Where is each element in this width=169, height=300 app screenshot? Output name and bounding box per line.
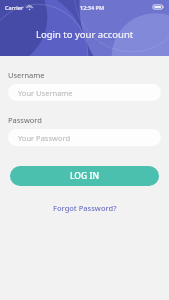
staticText: Your Username [18, 88, 73, 98]
staticText: Username [8, 70, 45, 80]
button[interactable]: Your Password [8, 129, 161, 146]
staticText: 12:34 PM [80, 4, 105, 11]
staticText: Login to your account [36, 28, 134, 41]
button[interactable]: Your Username [8, 84, 161, 101]
staticText: LOG IN [70, 170, 100, 182]
button[interactable]: Forgot Password? [47, 200, 123, 216]
button[interactable]: LOG IN [10, 166, 159, 186]
staticText: Your Password [18, 133, 71, 143]
staticText: Forgot Password? [53, 203, 117, 213]
staticText: Password [8, 115, 42, 125]
staticText: Carrier [5, 4, 24, 11]
